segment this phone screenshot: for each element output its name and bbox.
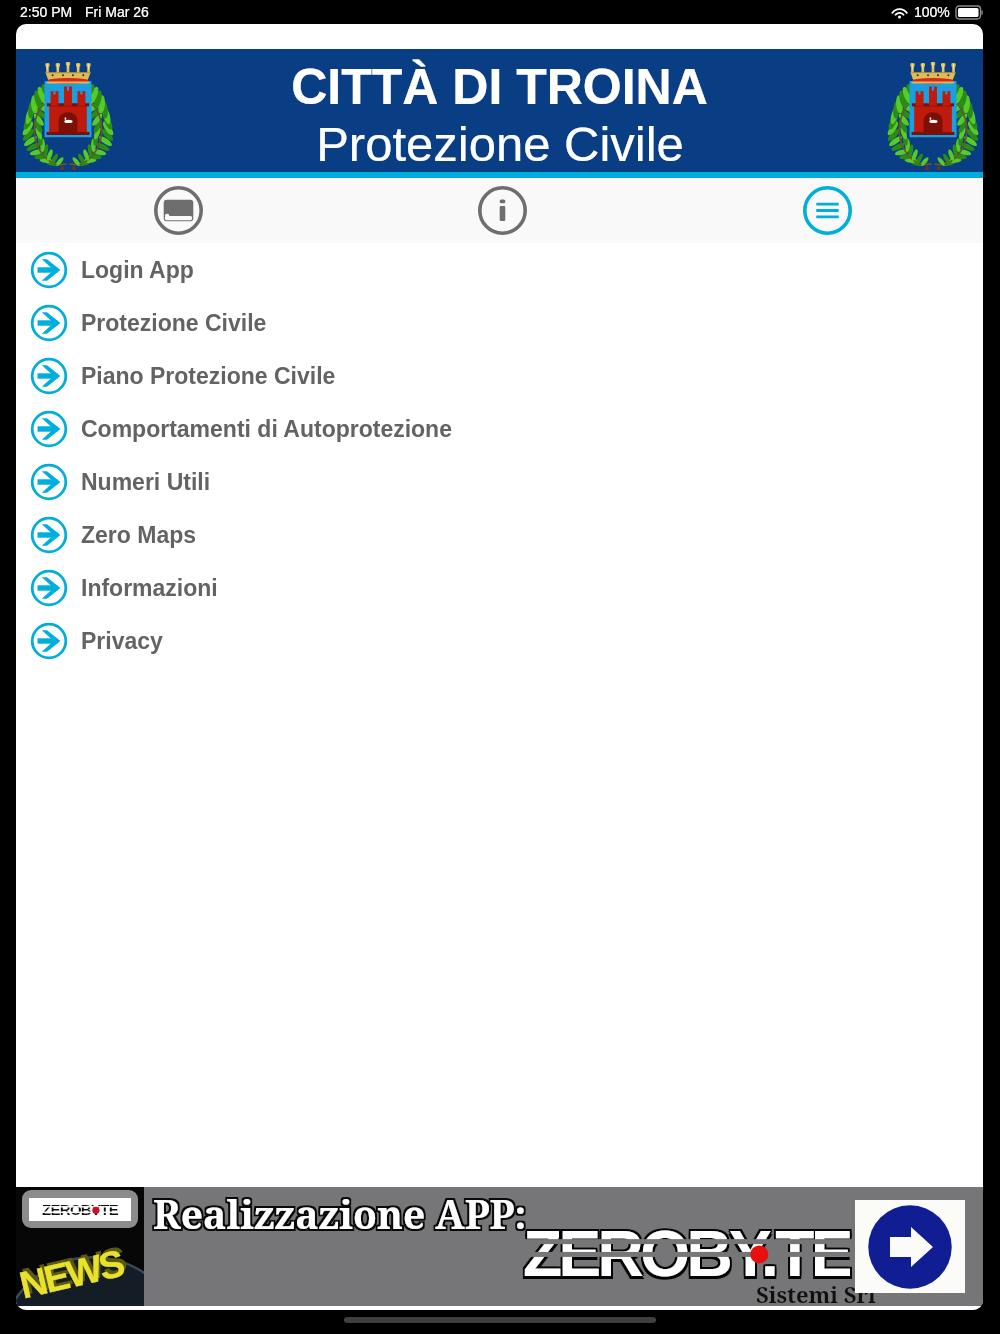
staticText: 100%	[914, 4, 950, 20]
staticText: Realizzazione APP:	[155, 1187, 529, 1240]
button[interactable]: Comportamenti di Autoprotezione	[16, 402, 983, 455]
staticText: ZEROBY.TE	[525, 1221, 852, 1285]
staticText: ZEROBY.TE	[525, 1216, 852, 1280]
staticText: ZEROBY.TE	[523, 1218, 850, 1282]
staticText: ZEROBY.TE	[525, 1218, 852, 1282]
staticText: ZEROBY.TE	[521, 1218, 848, 1282]
button[interactable]: Login App	[16, 243, 983, 296]
button[interactable]: Numeri Utili	[16, 455, 983, 508]
button[interactable]: Informazioni	[454, 178, 550, 243]
staticText: Privacy	[81, 628, 163, 654]
button[interactable]: Piano Protezione Civile	[16, 349, 983, 402]
staticText: 2:50 PM	[20, 4, 73, 20]
staticText: ZEROBY.TE	[521, 1216, 848, 1280]
staticText: Piano Protezione Civile	[81, 363, 336, 389]
staticText: Realizzazione APP:	[151, 1187, 525, 1240]
staticText: Protezione Civile	[316, 117, 684, 172]
staticText: ZEROBY.TE	[521, 1221, 848, 1285]
button[interactable]: Privacy	[16, 614, 983, 667]
staticText: Login App	[81, 257, 194, 283]
staticText: CITTÀ DI TROINA	[291, 59, 708, 115]
staticText: Sistemi Srl	[756, 1279, 876, 1309]
button[interactable]: Menu	[779, 178, 875, 243]
button[interactable]: Realizzazione APP: Zerobyte Sistemi Srl	[16, 1187, 983, 1310]
staticText: Protezione Civile	[81, 310, 267, 336]
staticText: Realizzazione APP:	[151, 1189, 525, 1242]
staticText: Informazioni	[81, 575, 218, 601]
staticText: Comportamenti di Autoprotezione	[81, 416, 452, 442]
staticText: NEWS	[19, 1238, 130, 1303]
staticText: Zero Maps	[81, 522, 197, 548]
staticText: Numeri Utili	[81, 469, 211, 495]
button[interactable]: Informazioni	[16, 561, 983, 614]
staticText: Realizzazione APP:	[153, 1187, 527, 1240]
staticText: Realizzazione APP:	[153, 1189, 527, 1242]
staticText: Realizzazione APP:	[151, 1185, 525, 1238]
staticText: Realizzazione APP:	[155, 1185, 529, 1238]
staticText: Realizzazione APP:	[153, 1185, 527, 1238]
staticText: Fri Mar 26	[85, 4, 149, 20]
button[interactable]: Banner	[130, 178, 226, 243]
button[interactable]: Zero Maps	[16, 508, 983, 561]
staticText: ZEROBY.TE	[523, 1216, 850, 1280]
staticText: ZEROBY.TE	[523, 1221, 850, 1285]
staticText: NEWS	[17, 1242, 128, 1306]
staticText: ZEROBYTE	[42, 1201, 119, 1218]
button[interactable]: Protezione Civile	[16, 296, 983, 349]
staticText: Realizzazione APP:	[155, 1189, 529, 1242]
